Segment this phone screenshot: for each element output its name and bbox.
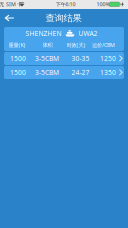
staticText: 1350	[100, 68, 116, 77]
staticText: 下午6:10	[55, 1, 75, 8]
staticText: 无 SIM 卡	[0, 1, 22, 8]
staticText: 24-27	[71, 68, 89, 77]
staticText: 100%	[96, 1, 109, 8]
button[interactable]: 1500	[4, 52, 124, 65]
staticText: 查询结果	[45, 12, 81, 24]
button[interactable]: 1500	[4, 66, 124, 79]
staticText: 3-5CBM	[35, 68, 59, 77]
staticText: 30-35	[71, 54, 89, 63]
staticText: 重量(K)	[8, 41, 25, 49]
staticText: SHENZHEN	[25, 29, 61, 38]
button[interactable]: 返回	[0, 9, 20, 27]
staticText: 1250	[100, 54, 116, 63]
staticText: 时效(天)	[66, 41, 85, 49]
staticText: 1500	[10, 68, 26, 77]
staticText: 3-5CBM	[35, 54, 59, 63]
staticText: 运价/CBM	[92, 41, 115, 49]
staticText: 1500	[10, 54, 26, 63]
staticText: 体积	[42, 42, 52, 48]
staticText: UWA2	[78, 29, 97, 38]
